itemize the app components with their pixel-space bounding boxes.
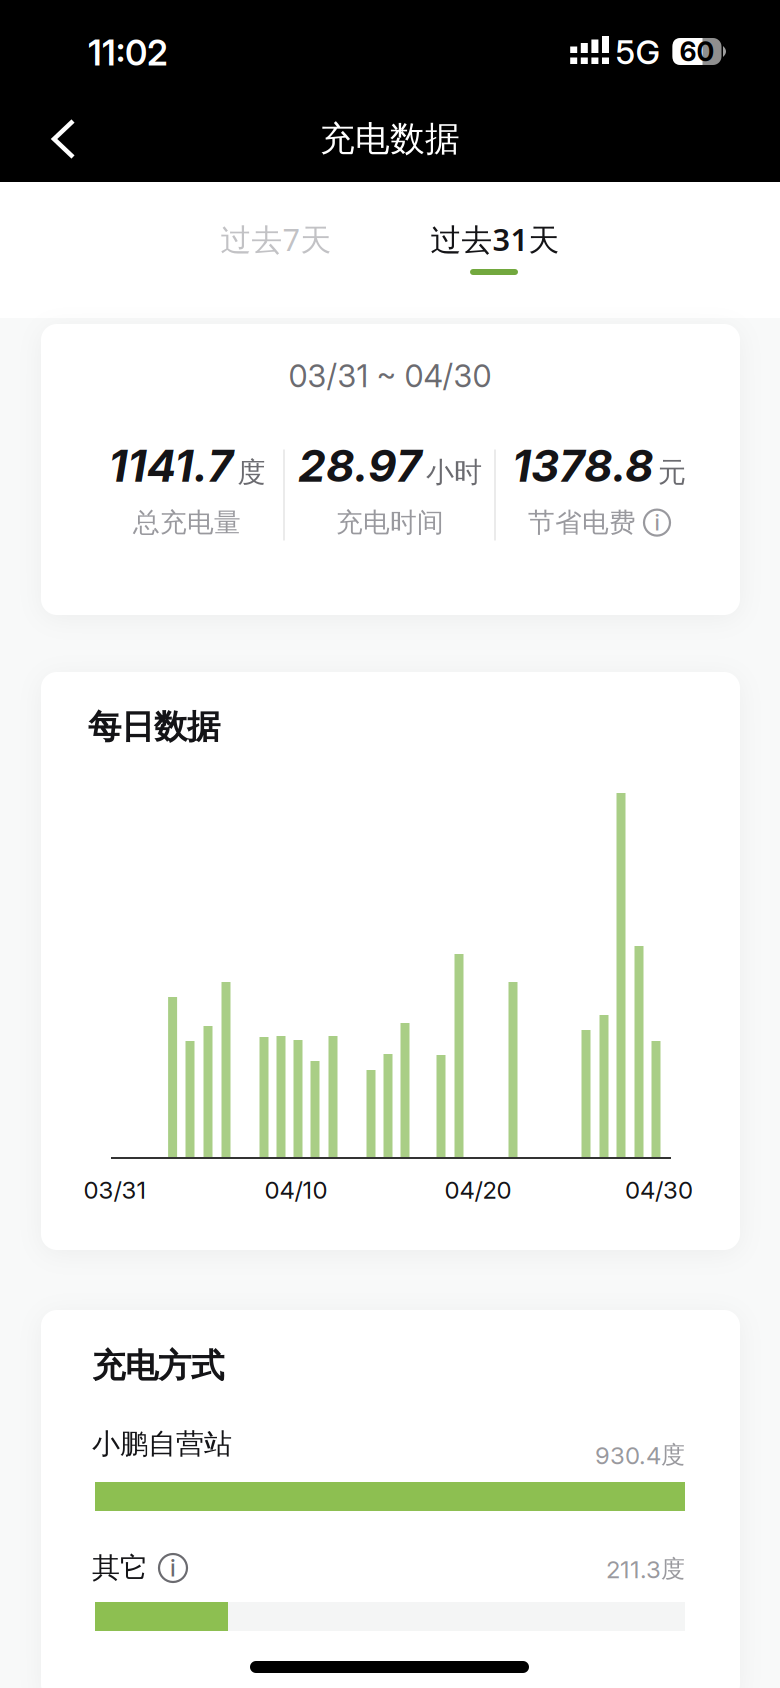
staticText: 元 [658, 455, 686, 489]
staticText: 度 [237, 455, 265, 489]
staticText: 节省电费 [528, 506, 636, 539]
button[interactable]: i [159, 1554, 187, 1582]
button[interactable]: 过去31天 [420, 209, 569, 269]
button[interactable] [40, 107, 87, 171]
staticText: 小时 [426, 455, 482, 489]
staticText: 每日数据 [88, 706, 220, 747]
button[interactable]: 过去7天 [210, 209, 341, 269]
staticText: 04/20 [444, 1175, 511, 1204]
staticText: 04/30 [625, 1175, 693, 1204]
staticText: 211.3度 [606, 1554, 685, 1584]
staticText: 过去7天 [220, 219, 331, 259]
staticText: 充电数据 [320, 118, 460, 160]
staticText: 930.4度 [595, 1440, 685, 1470]
staticText: 小鹏自营站 [92, 1427, 232, 1461]
staticText: 1141.7 [108, 439, 233, 492]
staticText: i [654, 510, 659, 536]
staticText: 1378.8 [512, 439, 654, 492]
staticText: 5G [615, 32, 660, 72]
staticText: 03/31 ~ 04/30 [288, 357, 491, 394]
staticText: 总充电量 [133, 506, 241, 539]
staticText: 充电时间 [336, 506, 444, 539]
staticText: 11:02 [88, 32, 168, 74]
staticText: 28.97 [298, 439, 422, 492]
staticText: 充电方式 [92, 1345, 224, 1386]
button[interactable]: i [644, 510, 670, 536]
staticText: 60 [679, 35, 714, 68]
staticText: 其它 [92, 1551, 148, 1585]
staticText: 过去31天 [430, 219, 559, 259]
staticText: i [170, 1554, 176, 1582]
staticText: 04/10 [264, 1175, 327, 1204]
staticText: 03/31 [83, 1175, 146, 1204]
